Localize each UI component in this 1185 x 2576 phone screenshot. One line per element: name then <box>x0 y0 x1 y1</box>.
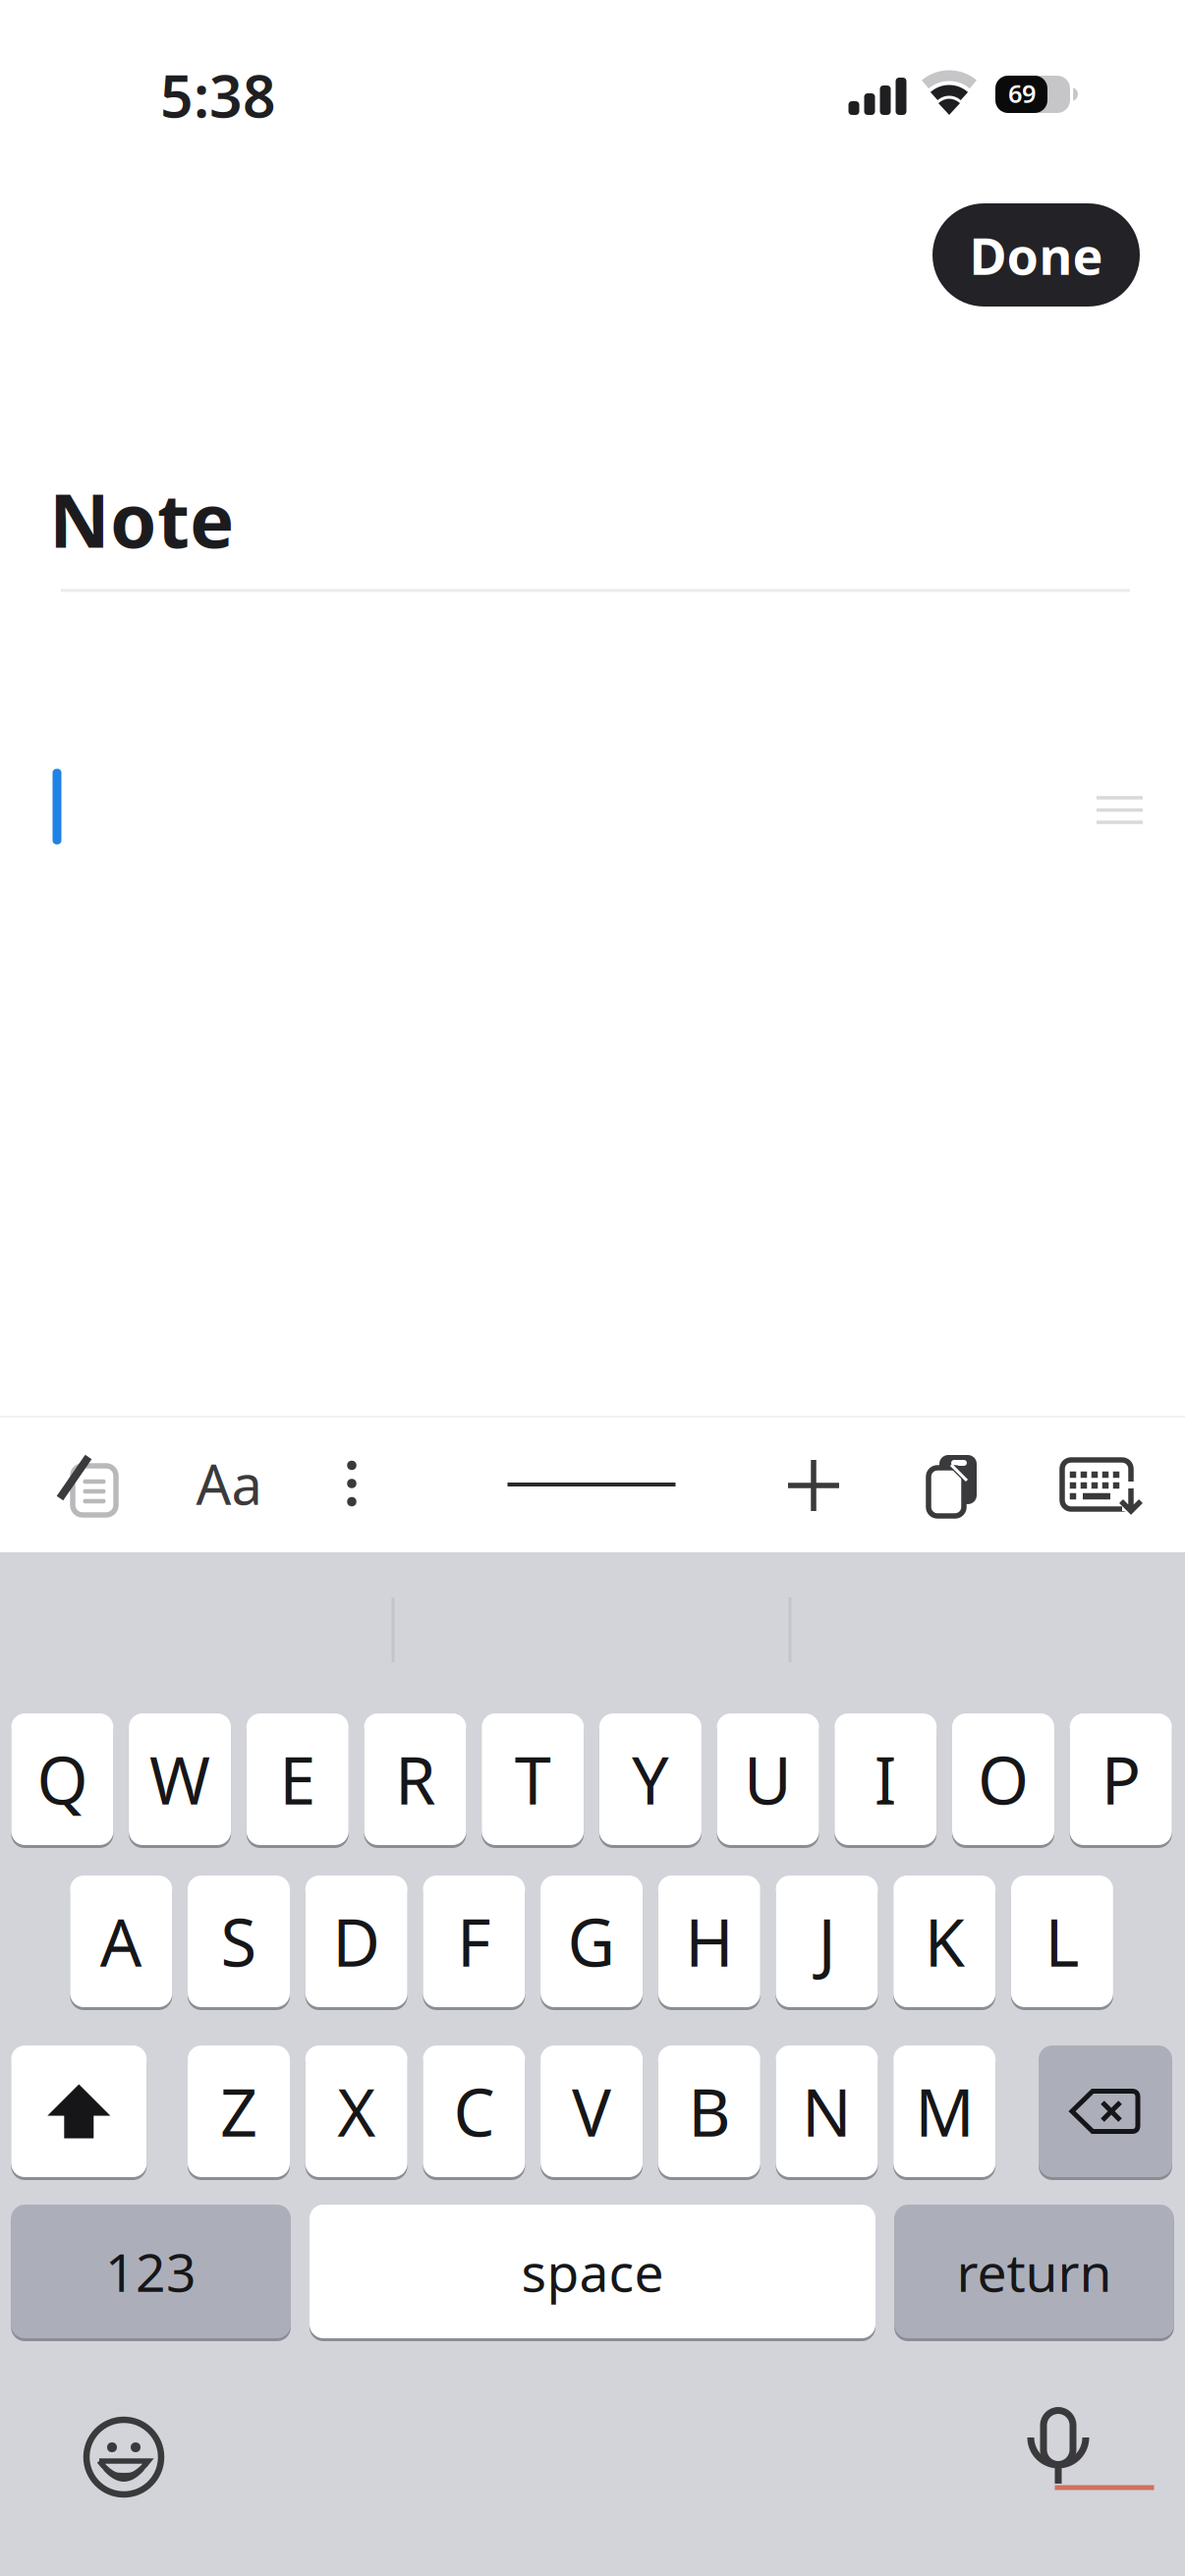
button[interactable]: Done <box>932 203 1140 307</box>
staticText: U <box>744 1736 792 1823</box>
button[interactable]: B <box>658 2045 760 2177</box>
button[interactable]: Q <box>11 1713 113 1845</box>
staticText: Aa <box>196 1447 262 1520</box>
button[interactable]: Shift <box>11 2045 147 2177</box>
button[interactable]: W <box>129 1713 231 1845</box>
staticText: C <box>453 2068 495 2155</box>
staticText: Done <box>969 221 1103 289</box>
staticText: D <box>332 1898 380 1985</box>
button[interactable]: U <box>717 1713 819 1845</box>
button[interactable]: R <box>364 1713 466 1845</box>
button[interactable]: I <box>835 1713 937 1845</box>
staticText: 123 <box>105 2237 197 2306</box>
staticText: Z <box>220 2068 257 2155</box>
button[interactable]: X <box>305 2045 407 2177</box>
staticText: E <box>279 1736 316 1823</box>
staticText: 69 <box>1008 77 1036 110</box>
button[interactable]: Add <box>788 1460 839 1511</box>
staticText: H <box>685 1898 733 1985</box>
staticText: N <box>802 2068 852 2155</box>
button[interactable]: Y <box>599 1713 701 1845</box>
staticText: return <box>956 2237 1112 2306</box>
button[interactable]: More options <box>347 1461 356 1506</box>
staticText: B <box>688 2068 730 2155</box>
button[interactable]: Emoji <box>83 2416 165 2498</box>
staticText: O <box>978 1736 1029 1823</box>
button[interactable]: O <box>952 1713 1054 1845</box>
staticText: J <box>818 1898 836 1985</box>
button[interactable]: Paste <box>921 1451 989 1520</box>
staticText: X <box>337 2068 376 2155</box>
staticText: T <box>515 1736 551 1823</box>
staticText: L <box>1045 1898 1079 1985</box>
button[interactable]: G <box>541 1876 643 2007</box>
staticText: I <box>874 1736 897 1823</box>
button[interactable]: Text formatting <box>196 1447 262 1520</box>
staticText: Q <box>37 1736 88 1823</box>
staticText: S <box>221 1898 257 1985</box>
button[interactable]: H <box>658 1876 760 2007</box>
button[interactable]: Dictation <box>1019 2407 1098 2486</box>
button[interactable]: K <box>893 1876 996 2007</box>
staticText: Note <box>49 469 234 568</box>
button[interactable]: V <box>541 2045 643 2177</box>
button[interactable]: M <box>893 2045 996 2177</box>
staticText: W <box>149 1736 210 1823</box>
button[interactable]: S <box>188 1876 290 2007</box>
button[interactable]: space <box>310 2205 875 2338</box>
button[interactable]: Note style <box>54 1451 123 1520</box>
staticText: F <box>457 1898 491 1985</box>
staticText: A <box>100 1898 142 1985</box>
button[interactable]: E <box>246 1713 349 1845</box>
button[interactable]: L <box>1011 1876 1113 2007</box>
staticText: P <box>1101 1736 1140 1823</box>
staticText: G <box>568 1898 616 1985</box>
button[interactable]: return <box>894 2205 1174 2338</box>
button[interactable]: Z <box>188 2045 290 2177</box>
button[interactable]: D <box>305 1876 407 2007</box>
button[interactable]: J <box>776 1876 878 2007</box>
staticText: K <box>924 1898 965 1985</box>
button[interactable]: N <box>776 2045 878 2177</box>
button[interactable]: 123 <box>11 2205 291 2338</box>
staticText: M <box>915 2068 974 2155</box>
button[interactable]: Reorder block <box>1097 796 1143 824</box>
button[interactable]: T <box>482 1713 584 1845</box>
staticText: V <box>572 2068 611 2155</box>
button[interactable]: A <box>70 1876 172 2007</box>
button[interactable]: Dismiss keyboard <box>1049 1445 1148 1524</box>
button[interactable]: P <box>1070 1713 1172 1845</box>
staticText: R <box>395 1736 435 1823</box>
button[interactable]: C <box>423 2045 525 2177</box>
button[interactable]: Delete <box>1039 2045 1172 2177</box>
staticText: space <box>521 2237 664 2306</box>
button[interactable]: F <box>423 1876 525 2007</box>
staticText: 5:38 <box>160 57 276 134</box>
staticText: Y <box>632 1736 669 1823</box>
